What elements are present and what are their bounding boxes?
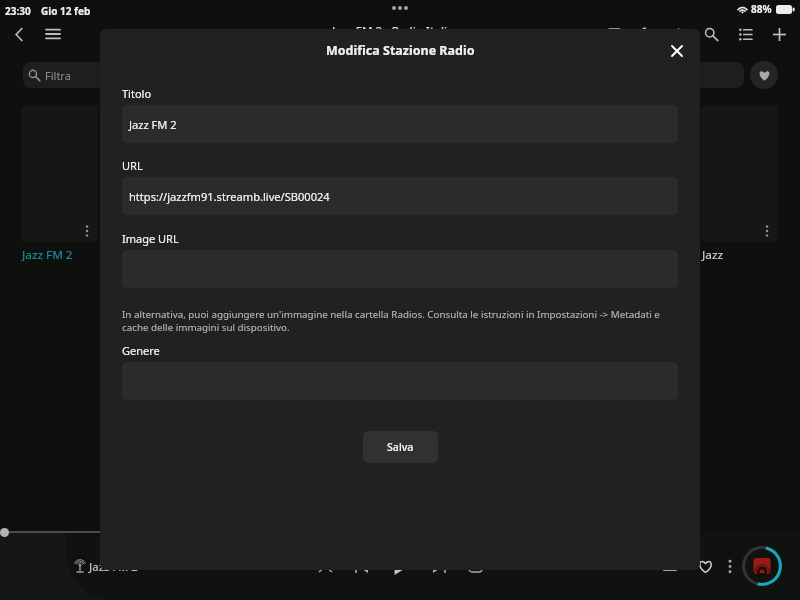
button[interactable]: More options (756, 220, 778, 242)
staticText: 88% (751, 2, 772, 16)
staticText: Jazz FM 2 (89, 559, 138, 574)
button[interactable]: Sleep timer (598, 21, 630, 47)
button[interactable]: Repeat (464, 555, 486, 577)
button[interactable]: Add station (762, 21, 796, 47)
staticText: 23:30 (5, 4, 31, 18)
button[interactable]: More options (76, 220, 98, 242)
staticText: Image URL (122, 231, 179, 246)
button[interactable]: Next (428, 555, 450, 577)
button[interactable]: Sort (662, 21, 694, 47)
staticText: Jazz (447, 247, 469, 263)
button[interactable]: More options (191, 106, 268, 242)
button[interactable]: Close (665, 39, 689, 63)
staticText: Salva (387, 440, 414, 454)
button[interactable]: Favourites (750, 61, 778, 89)
staticText: Jazz (617, 247, 639, 263)
staticText: Modifica Stazione Radio (326, 42, 475, 59)
staticText: Titolo (122, 86, 152, 101)
button[interactable]: Filtra (23, 62, 744, 88)
staticText: Jazz FM 2 - Radio Italiane (332, 23, 468, 39)
staticText: Jazz (532, 247, 554, 263)
button[interactable]: More options (361, 106, 438, 242)
button[interactable]: More options (21, 106, 98, 242)
staticText: Gio 12 feb (41, 4, 91, 18)
staticText: Genere (122, 343, 160, 358)
staticText: URL (122, 158, 143, 173)
button[interactable]: Back (4, 21, 34, 47)
staticText: Filtra (45, 68, 71, 83)
staticText: Jazz FM 2 (129, 117, 177, 132)
staticText: In alternativa, puoi aggiungere un'immag… (122, 308, 678, 334)
button[interactable]: Volume (656, 544, 684, 588)
staticText: Jazz (107, 247, 129, 263)
button[interactable]: Shuffle (314, 555, 336, 577)
button[interactable]: More options (616, 106, 693, 242)
button[interactable]: Search (694, 21, 728, 47)
staticText: Jazz (277, 247, 299, 263)
button[interactable]: More (719, 555, 741, 577)
button[interactable]: Now playing (742, 546, 782, 586)
button[interactable]: More options (446, 106, 523, 242)
staticText: Jazz FM 2 (22, 247, 73, 263)
button[interactable]: More options (531, 106, 608, 242)
button[interactable]: Salva (363, 431, 438, 463)
button[interactable]: More options (106, 106, 183, 242)
button[interactable]: More options (161, 220, 183, 242)
button[interactable]: More options (701, 106, 778, 242)
button[interactable]: Previous (350, 555, 372, 577)
button[interactable]: Jazz FM 2 (122, 105, 678, 143)
button[interactable]: Menu (38, 21, 68, 47)
button[interactable]: List view (728, 21, 762, 47)
staticText: Jazz (192, 247, 214, 263)
button[interactable]: Play (386, 552, 414, 580)
button[interactable]: Favourite (692, 553, 718, 579)
button[interactable]: More options (276, 106, 353, 242)
staticText: Jazz (702, 247, 724, 263)
button[interactable]: Refresh (630, 21, 662, 47)
staticText: https://jazzfm91.streamb.live/SB00024 (129, 189, 330, 204)
staticText: Jazz (362, 247, 384, 263)
button[interactable]: https://jazzfm91.streamb.live/SB00024 (122, 177, 678, 215)
